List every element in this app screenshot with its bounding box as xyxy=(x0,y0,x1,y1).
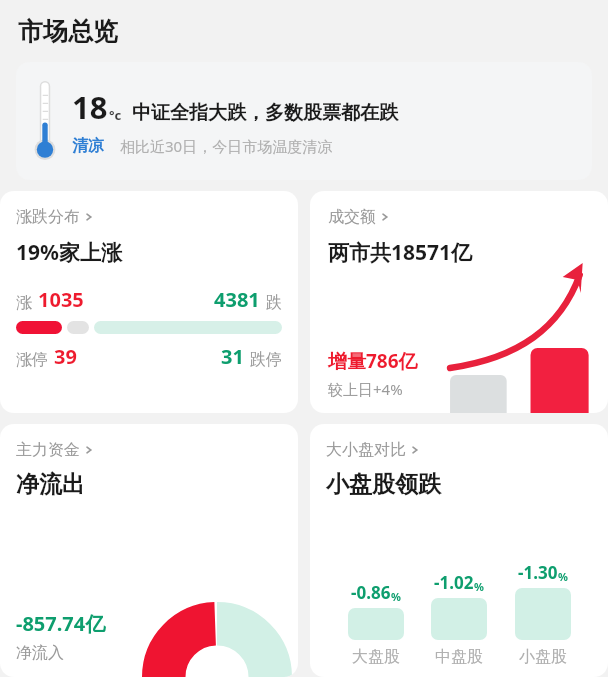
staticText: 涨停 xyxy=(16,350,48,370)
staticText: 相比近30日，今日市场温度清凉 xyxy=(120,136,333,156)
staticText: % xyxy=(558,569,568,584)
staticText: 大盘股 xyxy=(352,647,400,667)
staticText: % xyxy=(474,579,484,594)
staticText: 成交额 xyxy=(328,207,376,227)
button[interactable]: 18 xyxy=(16,62,592,180)
staticText: 市场总览 xyxy=(18,16,118,47)
staticText: 小盘股 xyxy=(519,647,567,667)
staticText: 1035 xyxy=(38,286,84,313)
staticText: -1.02 xyxy=(434,571,474,594)
staticText: -0.86 xyxy=(351,581,391,604)
button[interactable]: 大小盘对比 xyxy=(310,424,608,677)
staticText: 跌停 xyxy=(250,350,282,370)
staticText: 18 xyxy=(72,86,108,128)
staticText: 主力资金 xyxy=(16,440,80,460)
staticText: 4381 xyxy=(214,286,260,313)
button[interactable]: 成交额 xyxy=(310,191,608,413)
staticText: 跌 xyxy=(266,293,282,313)
staticText: 净流入 xyxy=(16,643,64,663)
staticText: 清凉 xyxy=(72,136,104,156)
staticText: 31 xyxy=(221,343,244,370)
staticText: 净流出 xyxy=(16,470,85,499)
staticText: 39 xyxy=(54,343,77,370)
staticText: °c xyxy=(109,106,122,124)
staticText: -857.74亿 xyxy=(16,610,106,637)
staticText: 大小盘对比 xyxy=(326,440,406,460)
staticText: 中证全指大跌，多数股票都在跌 xyxy=(132,101,398,125)
staticText: 涨跌分布 xyxy=(16,207,80,227)
button[interactable]: 主力资金 xyxy=(0,424,298,677)
staticText: 增量786亿 xyxy=(328,348,418,374)
staticText: 涨 xyxy=(16,293,32,313)
staticText: 较上日+4% xyxy=(328,379,403,399)
staticText: 19%家上涨 xyxy=(16,238,122,267)
staticText: 中盘股 xyxy=(435,647,483,667)
staticText: 小盘股领跌 xyxy=(326,470,441,499)
staticText: 两市共18571亿 xyxy=(328,238,473,267)
staticText: -1.30 xyxy=(518,561,558,584)
button[interactable]: 涨跌分布 xyxy=(0,191,298,413)
staticText: % xyxy=(391,589,401,604)
